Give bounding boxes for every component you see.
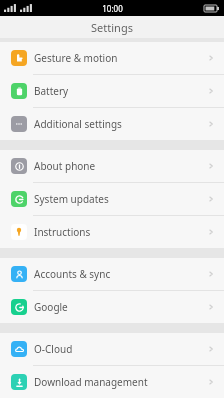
other: Open (207, 54, 215, 62)
staticText: Google (34, 300, 68, 314)
staticText: Instructions (34, 225, 91, 239)
other: Open (207, 195, 215, 203)
other: Open (207, 162, 215, 170)
button[interactable]: Download management (0, 366, 224, 398)
staticText: System updates (34, 192, 109, 206)
other: Open (207, 345, 215, 353)
staticText: Additional settings (34, 117, 122, 131)
button[interactable]: Google (0, 291, 224, 323)
other: Open (207, 120, 215, 128)
other: Open (207, 228, 215, 236)
staticText: 10:00 (102, 3, 123, 14)
staticText: Gesture & motion (34, 51, 118, 65)
staticText: About phone (34, 159, 96, 173)
button[interactable]: Gesture & motion (0, 42, 224, 74)
button[interactable]: O-Cloud (0, 333, 224, 365)
staticText: Download management (34, 375, 148, 389)
button[interactable]: System updates (0, 183, 224, 215)
staticText: Battery (34, 84, 69, 98)
staticText: Accounts & sync (34, 267, 111, 281)
button[interactable]: Battery (0, 75, 224, 107)
button[interactable]: Additional settings (0, 108, 224, 140)
button[interactable]: Accounts & sync (0, 258, 224, 290)
button[interactable]: About phone (0, 150, 224, 182)
other: Open (207, 378, 215, 386)
staticText: Settings (91, 20, 133, 35)
button[interactable]: Instructions (0, 216, 224, 248)
staticText: O-Cloud (34, 342, 73, 356)
other: Open (207, 87, 215, 95)
other: Open (207, 303, 215, 311)
other: Open (207, 270, 215, 278)
